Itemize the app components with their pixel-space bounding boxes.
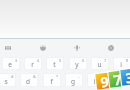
staticText: f bbox=[50, 77, 53, 86]
staticText: 6 bbox=[82, 58, 85, 63]
staticText: 8 bbox=[126, 58, 129, 63]
staticText: 3 bbox=[15, 58, 18, 63]
button[interactable]: s bbox=[0, 73, 16, 87]
staticText: i bbox=[120, 60, 122, 69]
staticText: 3 bbox=[124, 67, 130, 86]
staticText: s bbox=[4, 77, 8, 86]
staticText: ( bbox=[122, 74, 124, 79]
button[interactable]: y bbox=[69, 57, 87, 70]
staticText: r bbox=[31, 60, 34, 69]
staticText: - bbox=[78, 74, 80, 79]
button[interactable]: Settings bbox=[104, 41, 118, 55]
staticText: 5 bbox=[59, 58, 62, 63]
staticText: j bbox=[116, 77, 118, 86]
staticText: e bbox=[8, 60, 12, 69]
staticText: h bbox=[93, 77, 98, 86]
staticText: 4 bbox=[37, 58, 40, 63]
staticText: t bbox=[53, 60, 56, 69]
button[interactable]: h bbox=[87, 73, 105, 87]
staticText: * bbox=[56, 74, 59, 79]
button[interactable]: r bbox=[24, 57, 42, 70]
staticText: g bbox=[71, 77, 75, 86]
button[interactable]: d bbox=[20, 73, 38, 87]
button[interactable]: t bbox=[46, 57, 64, 70]
button[interactable]: f bbox=[43, 73, 61, 87]
button[interactable]: u bbox=[91, 57, 109, 70]
staticText: & bbox=[33, 74, 36, 79]
button[interactable]: j bbox=[109, 73, 127, 87]
staticText: 7 bbox=[104, 58, 107, 63]
button[interactable]: Emoji bbox=[36, 41, 50, 55]
button[interactable]: Clipboard bbox=[1, 41, 15, 55]
button[interactable]: e bbox=[2, 57, 20, 70]
button[interactable]: g bbox=[65, 73, 83, 87]
button[interactable]: i bbox=[113, 57, 130, 70]
staticText: 7 bbox=[112, 69, 123, 88]
staticText: d bbox=[26, 77, 30, 86]
button[interactable]: Microphone bbox=[70, 41, 84, 55]
staticText: 9 bbox=[99, 71, 110, 90]
staticText: u bbox=[97, 60, 102, 69]
staticText: y bbox=[75, 60, 79, 69]
staticText: + bbox=[100, 74, 103, 79]
staticText: # bbox=[11, 74, 14, 79]
